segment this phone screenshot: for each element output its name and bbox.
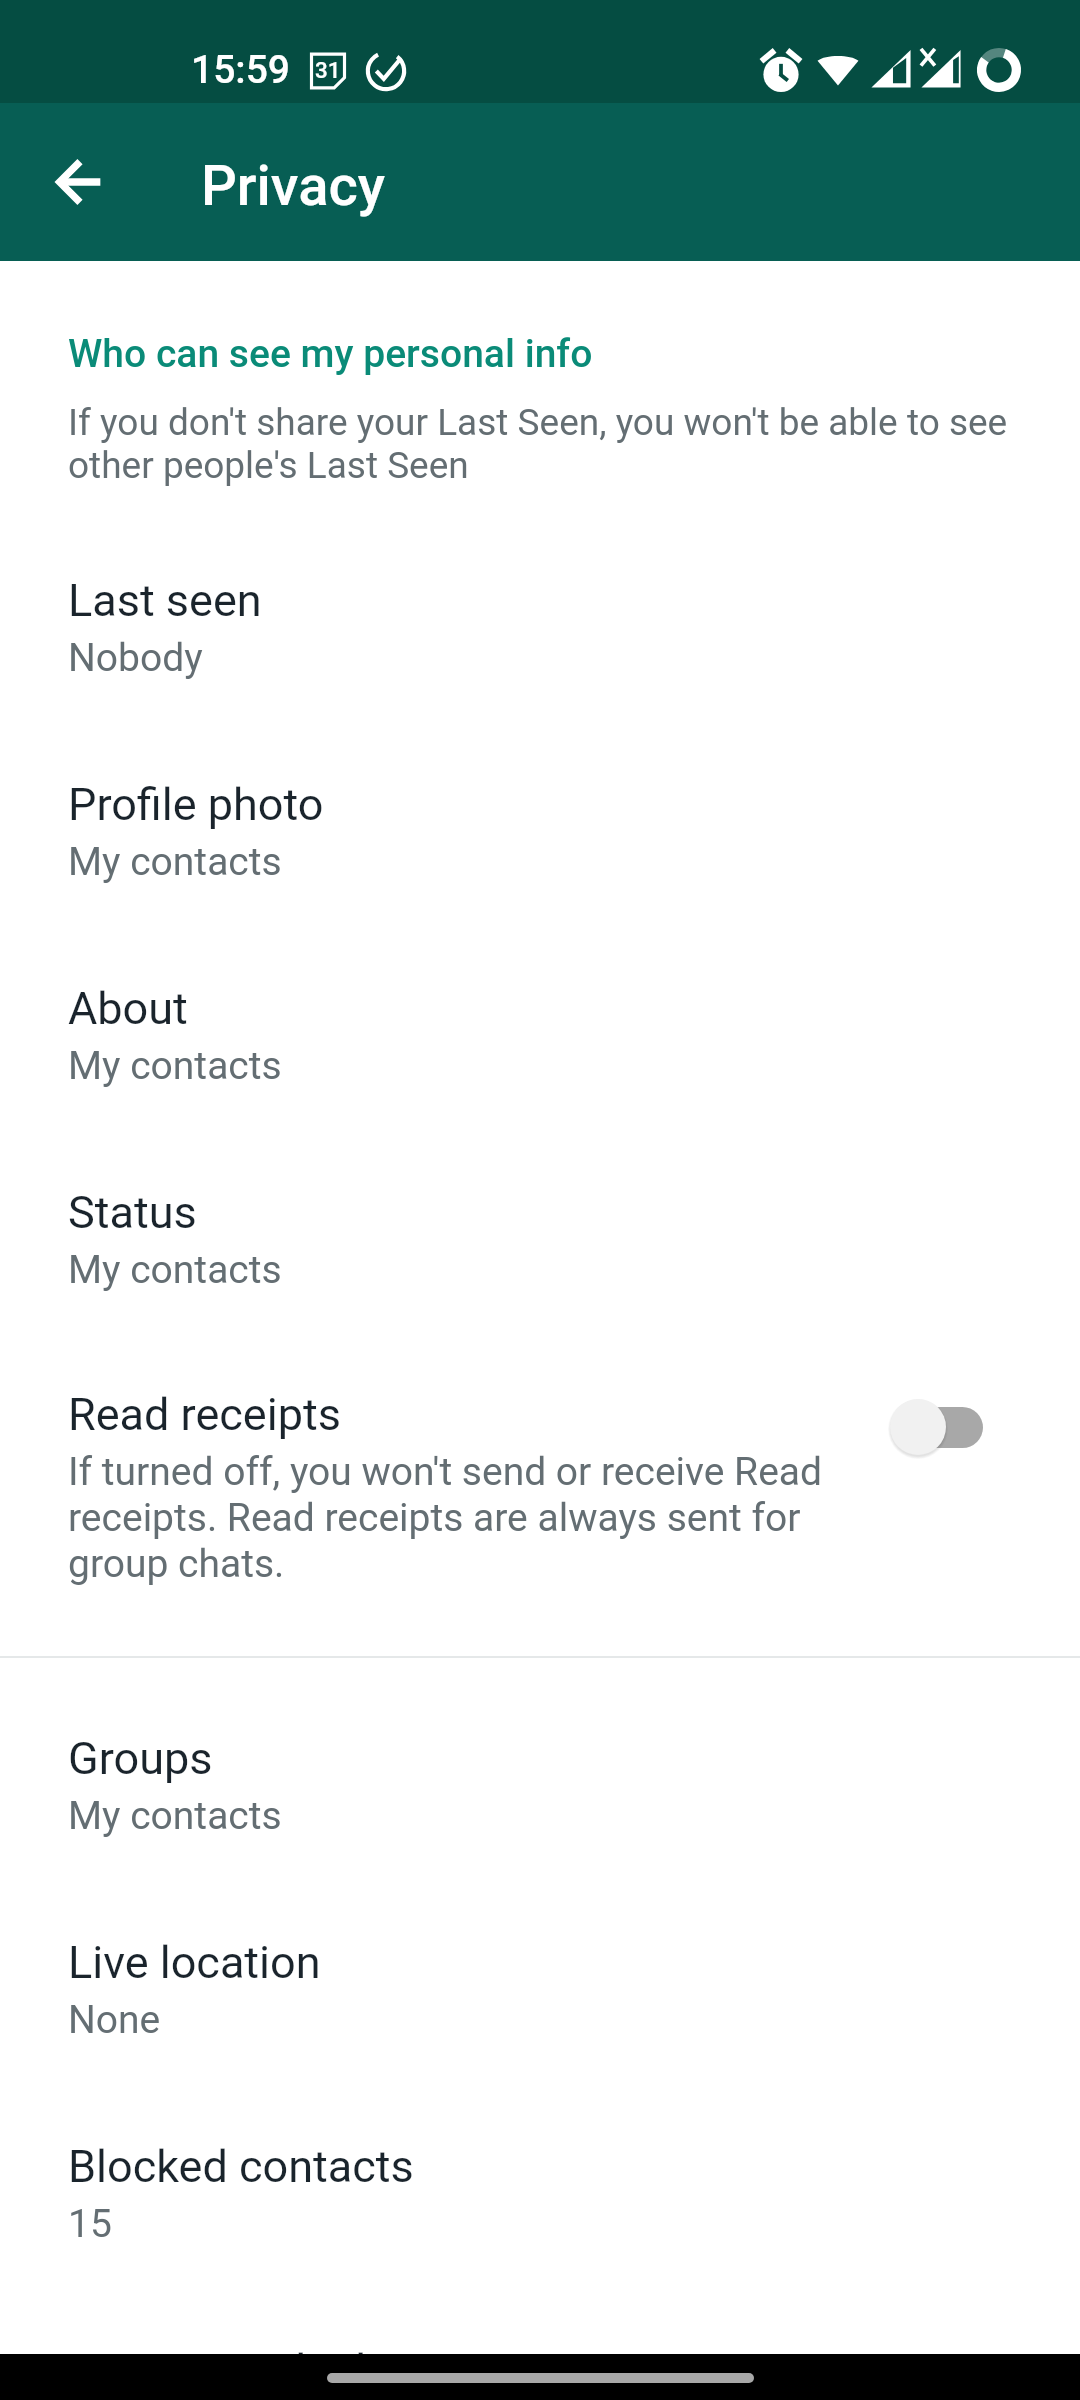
staticText: Read receipts: [68, 1388, 341, 1441]
button[interactable]: Read receipts: [0, 1341, 1080, 1656]
staticText: Profile photo: [68, 778, 324, 831]
staticText: Who can see my personal info: [68, 331, 593, 377]
staticText: My contacts: [68, 1043, 282, 1089]
button[interactable]: Blocked contacts: [0, 2091, 1080, 2295]
button[interactable]: Profile photo: [0, 729, 1080, 933]
button[interactable]: Groups: [0, 1683, 1080, 1887]
staticText: Live location: [68, 1936, 321, 1989]
staticText: If turned off, you won't send or receive…: [68, 1449, 868, 1587]
button[interactable]: Last seen: [0, 525, 1080, 729]
button[interactable]: Read receipts toggle: [890, 1397, 983, 1457]
staticText: Privacy: [201, 153, 386, 219]
button[interactable]: Back: [8, 110, 152, 254]
staticText: About: [68, 982, 188, 1035]
staticText: My contacts: [68, 839, 282, 885]
staticText: 15: [68, 2201, 112, 2247]
staticText: Status: [68, 1186, 197, 1239]
staticText: Last seen: [68, 574, 262, 627]
button[interactable]: Fingerprint lock: [0, 2295, 1080, 2400]
button[interactable]: Status: [0, 1137, 1080, 1341]
staticText: 31: [315, 57, 341, 83]
staticText: None: [68, 1997, 161, 2043]
staticText: Groups: [68, 1732, 213, 1785]
staticText: My contacts: [68, 1247, 282, 1293]
staticText: My contacts: [68, 1793, 282, 1839]
button[interactable]: Live location: [0, 1887, 1080, 2091]
staticText: 15:59: [191, 47, 291, 93]
staticText: Fingerprint lock: [68, 2344, 379, 2397]
staticText: Nobody: [68, 635, 203, 681]
staticText: Blocked contacts: [68, 2140, 414, 2193]
staticText: If you don't share your Last Seen, you w…: [68, 401, 1012, 487]
button[interactable]: About: [0, 933, 1080, 1137]
